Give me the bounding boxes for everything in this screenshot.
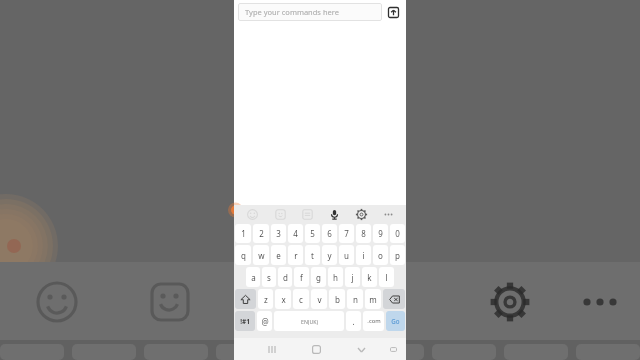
staticText: l — [385, 272, 388, 283]
staticText: j — [351, 272, 354, 283]
button[interactable]: Settings — [348, 205, 375, 223]
button[interactable]: 3 — [271, 224, 286, 243]
button[interactable]: 6 — [322, 224, 337, 243]
staticText: EN(UK) — [301, 318, 318, 325]
staticText: z — [264, 294, 268, 305]
button[interactable]: Type your commands here — [238, 3, 382, 21]
button[interactable]: w — [253, 245, 269, 265]
button[interactable]: o — [373, 245, 388, 265]
staticText: a — [251, 272, 256, 283]
button[interactable]: r — [288, 245, 303, 265]
button[interactable]: EN(UK) — [274, 311, 344, 331]
staticText: u — [344, 250, 349, 261]
button[interactable]: 1 — [235, 224, 251, 243]
staticText: t — [311, 250, 314, 261]
button[interactable]: 5 — [305, 224, 320, 243]
button[interactable]: @ — [257, 311, 272, 331]
button[interactable]: 8 — [356, 224, 371, 243]
button[interactable]: 4 — [288, 224, 303, 243]
staticText: p — [395, 250, 400, 261]
button[interactable]: d — [278, 267, 292, 287]
staticText: @ — [261, 316, 269, 327]
staticText: .com — [367, 317, 381, 325]
button[interactable]: More options — [375, 205, 402, 223]
staticText: f — [300, 272, 303, 283]
staticText: 1 — [241, 228, 246, 239]
staticText: g — [316, 272, 321, 283]
button[interactable]: c — [293, 289, 309, 309]
staticText: n — [353, 294, 358, 305]
staticText: m — [369, 294, 377, 305]
button[interactable]: 9 — [373, 224, 388, 243]
button[interactable]: g — [311, 267, 326, 287]
button[interactable]: e — [271, 245, 286, 265]
staticText: y — [327, 250, 332, 261]
button[interactable]: j — [345, 267, 360, 287]
staticText: h — [333, 272, 338, 283]
button[interactable]: Hide keyboard — [339, 338, 384, 360]
button[interactable]: Backspace — [383, 289, 405, 309]
button[interactable]: l — [379, 267, 394, 287]
button[interactable]: !#1 — [235, 311, 255, 331]
button[interactable]: x — [275, 289, 291, 309]
staticText: k — [367, 272, 372, 283]
button[interactable]: Clipboard — [294, 205, 321, 223]
staticText: o — [378, 250, 383, 261]
staticText: 5 — [310, 228, 315, 239]
button[interactable]: u — [339, 245, 354, 265]
button[interactable]: q — [235, 245, 251, 265]
button[interactable]: b — [329, 289, 345, 309]
button[interactable]: t — [305, 245, 320, 265]
button[interactable]: 2 — [253, 224, 269, 243]
staticText: 6 — [327, 228, 332, 239]
button[interactable]: s — [262, 267, 276, 287]
button[interactable]: Stickers — [266, 205, 294, 223]
staticText: 8 — [361, 228, 366, 239]
staticText: 3 — [276, 228, 281, 239]
button[interactable]: k — [362, 267, 377, 287]
staticText: w — [258, 250, 265, 261]
button[interactable]: Emoji — [238, 205, 266, 223]
button[interactable]: Go — [386, 311, 405, 331]
button[interactable]: Shift — [235, 289, 256, 309]
staticText: !#1 — [240, 317, 250, 326]
staticText: Type your commands here — [245, 7, 339, 17]
staticText: 0 — [395, 228, 400, 239]
staticText: Go — [391, 317, 400, 325]
button[interactable]: n — [347, 289, 363, 309]
button[interactable]: Voice input — [321, 205, 348, 223]
staticText: . — [352, 316, 355, 327]
button[interactable]: m — [365, 289, 381, 309]
staticText: q — [241, 250, 246, 261]
button[interactable]: Home — [294, 338, 339, 360]
button[interactable]: f — [294, 267, 309, 287]
staticText: 2 — [259, 228, 264, 239]
button[interactable]: Insert — [385, 4, 402, 21]
button[interactable]: Keyboard — [384, 338, 402, 360]
button[interactable]: h — [328, 267, 343, 287]
staticText: s — [267, 272, 271, 283]
button[interactable]: 7 — [339, 224, 354, 243]
staticText: e — [276, 250, 281, 261]
staticText: i — [362, 250, 365, 261]
button[interactable]: v — [311, 289, 327, 309]
staticText: b — [335, 294, 340, 305]
button[interactable]: . — [346, 311, 361, 331]
staticText: x — [281, 294, 286, 305]
staticText: 7 — [344, 228, 349, 239]
button[interactable]: z — [258, 289, 273, 309]
button[interactable]: 0 — [390, 224, 405, 243]
button[interactable]: Recents — [250, 338, 294, 360]
staticText: c — [299, 294, 303, 305]
button[interactable]: p — [390, 245, 405, 265]
staticText: d — [283, 272, 288, 283]
button[interactable]: .com — [363, 311, 384, 331]
button[interactable]: y — [322, 245, 337, 265]
staticText: r — [294, 250, 298, 261]
button[interactable]: i — [356, 245, 371, 265]
staticText: v — [317, 294, 322, 305]
staticText: 4 — [293, 228, 298, 239]
button[interactable]: a — [246, 267, 260, 287]
staticText: 9 — [378, 228, 383, 239]
